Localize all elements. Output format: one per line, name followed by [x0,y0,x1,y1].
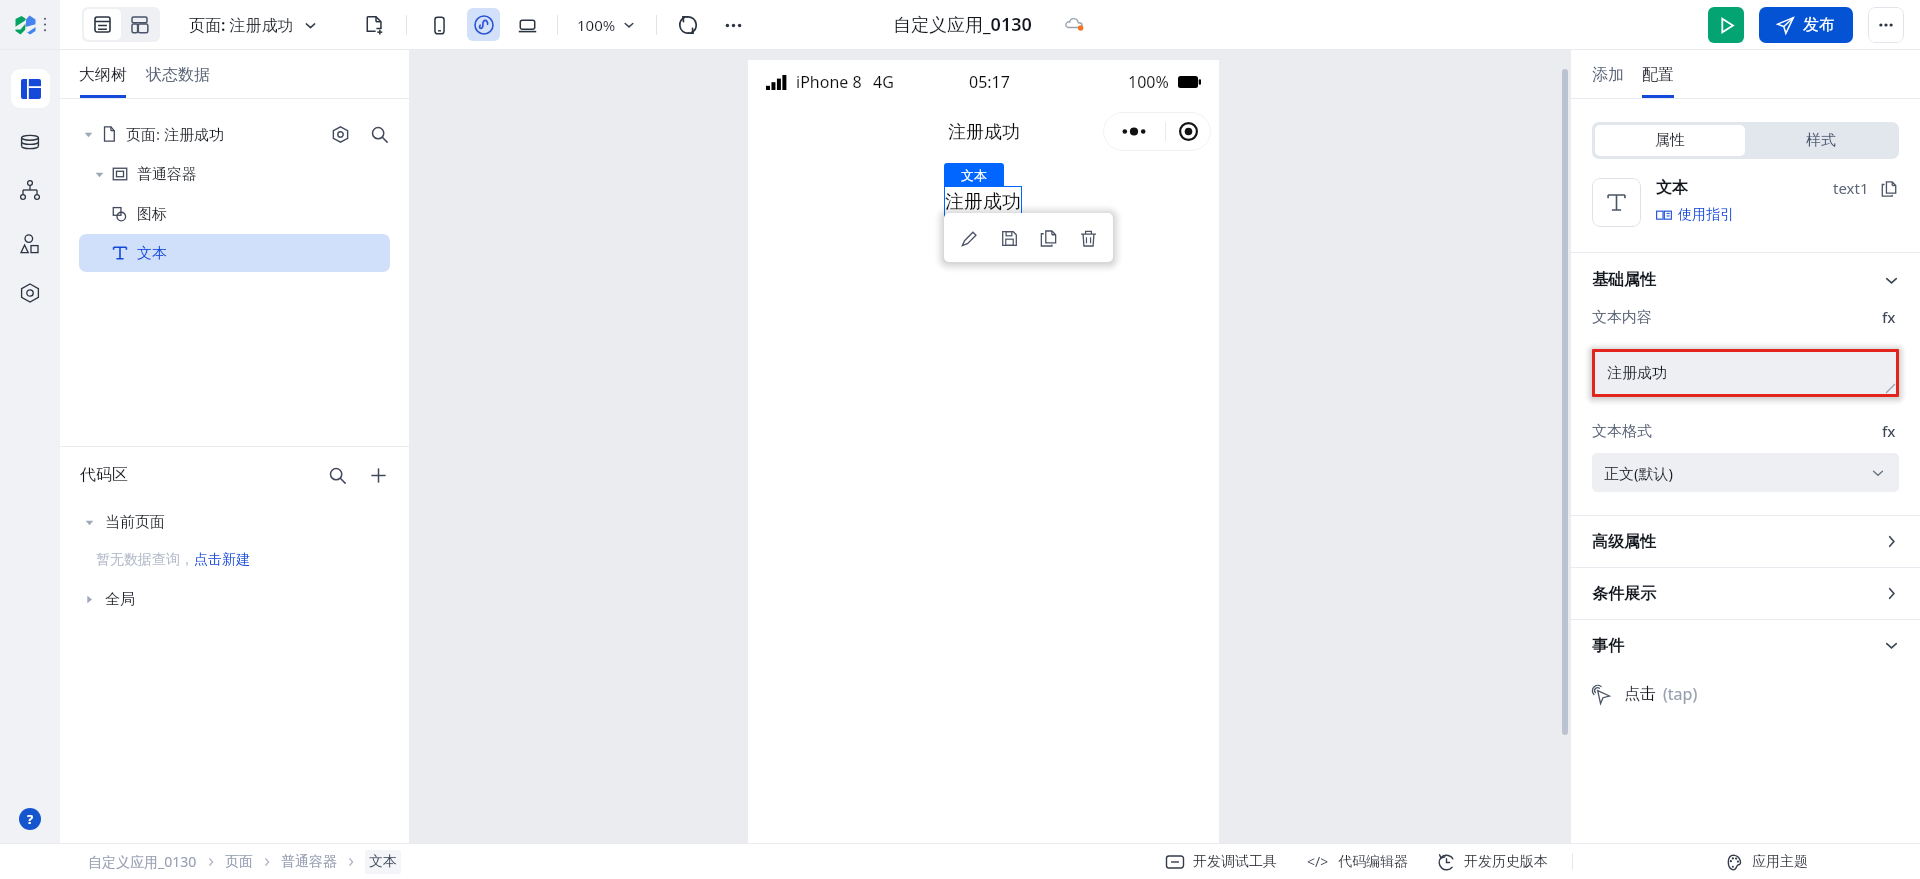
staticText: 100% [577,15,616,35]
button[interactable]: Edit [954,223,984,253]
staticText: 4G [873,71,894,93]
staticText: 自定义应用_0130 [893,12,1032,37]
staticText: 属性 [1655,131,1685,150]
button[interactable]: Components [11,225,49,263]
staticText: 普通容器 [137,165,197,184]
button[interactable]: Formula [1879,421,1899,441]
staticText: iPhone 8 [796,71,862,93]
staticText: 暂无数据查询， [96,551,194,569]
button[interactable]: 高级属性 [1571,516,1920,567]
staticText: (tap) [1663,683,1698,705]
button[interactable]: 添加 [1592,65,1624,98]
button[interactable]: 点击 [1571,671,1920,717]
button[interactable]: Page settings [328,122,352,146]
button[interactable]: Delete [1073,223,1103,253]
button[interactable]: 状态数据 [146,65,210,98]
button[interactable]: Desktop preview [512,10,542,40]
staticText: 使用指引 [1678,206,1734,224]
button[interactable]: 页面 [225,849,253,875]
button[interactable]: Flows [11,171,49,209]
staticText: 注册成功 [948,121,1020,144]
button[interactable]: 条件展示 [1571,568,1920,619]
staticText: text1 [1833,178,1869,198]
staticText: 文本 [137,244,167,263]
button[interactable]: 正文(默认) [1592,453,1899,492]
staticText: 代码区 [80,465,128,485]
staticText: 条件展示 [1592,584,1656,604]
button[interactable]: Duplicate [1033,223,1063,253]
button[interactable]: 页面: 注册成功 [60,114,409,154]
button[interactable]: Mini program preview [467,8,500,41]
button[interactable]: Data [11,124,49,162]
staticText: 05:17 [969,71,1010,93]
staticText: fx [1882,307,1896,327]
staticText: 文本内容 [1592,308,1652,327]
staticText: 应用主题 [1752,853,1808,871]
button[interactable]: 当前页面 [60,503,409,541]
staticText: 文本 [369,853,397,871]
button[interactable]: 文本 [79,234,390,272]
staticText: 全局 [105,590,135,609]
staticText: </> [1307,852,1329,871]
staticText: 页面: 注册成功 [126,124,224,144]
staticText: 注册成功 [1607,364,1667,383]
button[interactable]: Refresh [673,10,703,40]
staticText: 文本格式 [1592,422,1652,441]
staticText: ? [27,810,34,828]
button[interactable]: Search tree [367,122,391,146]
button[interactable]: Help [19,808,41,830]
staticText: 样式 [1806,131,1836,150]
staticText: 正文(默认) [1604,463,1674,483]
button[interactable]: 普通容器 [60,154,409,194]
button[interactable]: Copy id [1878,178,1899,199]
button[interactable]: Save [994,223,1024,253]
button[interactable]: More actions [1868,7,1904,43]
button[interactable]: Add code [365,462,391,488]
staticText: 当前页面 [105,513,165,532]
button[interactable]: Formula [1879,307,1899,327]
button[interactable]: 注册成功 [1595,352,1896,394]
button[interactable]: Outline view [84,9,121,40]
staticText: fx [1882,421,1896,441]
button[interactable]: 100% [575,13,637,37]
button[interactable]: 普通容器 [281,849,337,875]
button[interactable]: 自定义应用_0130 [88,848,197,875]
button[interactable]: 使用指引 [1656,205,1734,225]
button[interactable]: 全局 [60,579,409,619]
staticText: 注册成功 [945,190,1021,214]
button[interactable]: 属性 [1595,125,1745,156]
button[interactable]: 事件 [1571,620,1920,671]
staticText: 文本 [1656,178,1688,198]
staticText: 代码编辑器 [1338,853,1408,871]
staticText: 发布 [1803,15,1835,35]
button[interactable]: Pages [11,69,50,108]
button[interactable]: Settings [11,274,49,312]
button[interactable]: Close [1166,112,1211,151]
button[interactable]: More tools [718,10,748,40]
staticText: 基础属性 [1592,270,1656,290]
button[interactable]: 发布 [1759,7,1853,43]
staticText: 文本 [961,167,987,183]
button[interactable]: 开发历史版本 [1434,849,1552,875]
button[interactable]: New page [359,10,389,40]
button[interactable]: Run [1708,7,1744,43]
button[interactable]: Phone preview [424,10,454,40]
button[interactable]: 文本 [365,850,401,874]
button[interactable]: Search code [324,462,350,488]
button[interactable]: 点击新建 [194,547,250,573]
button[interactable]: 样式 [1745,125,1896,156]
staticText: 页面: 注册成功 [189,14,294,36]
button[interactable]: 开发调试工具 [1162,849,1281,875]
button[interactable]: 图标 [60,194,409,234]
button[interactable]: </> [1303,848,1412,875]
staticText: 点击 [1624,684,1656,704]
button[interactable]: Menu [1103,112,1165,151]
button[interactable]: 基础属性 [1571,253,1920,307]
staticText: 开发历史版本 [1464,853,1548,871]
button[interactable]: 大纲树 [79,65,127,95]
button[interactable]: 配置 [1642,65,1674,95]
staticText: 100% [1128,71,1169,93]
button[interactable]: Layout view [121,9,158,40]
button[interactable]: 页面: 注册成功 [187,10,319,40]
button[interactable]: 应用主题 [1722,849,1812,875]
